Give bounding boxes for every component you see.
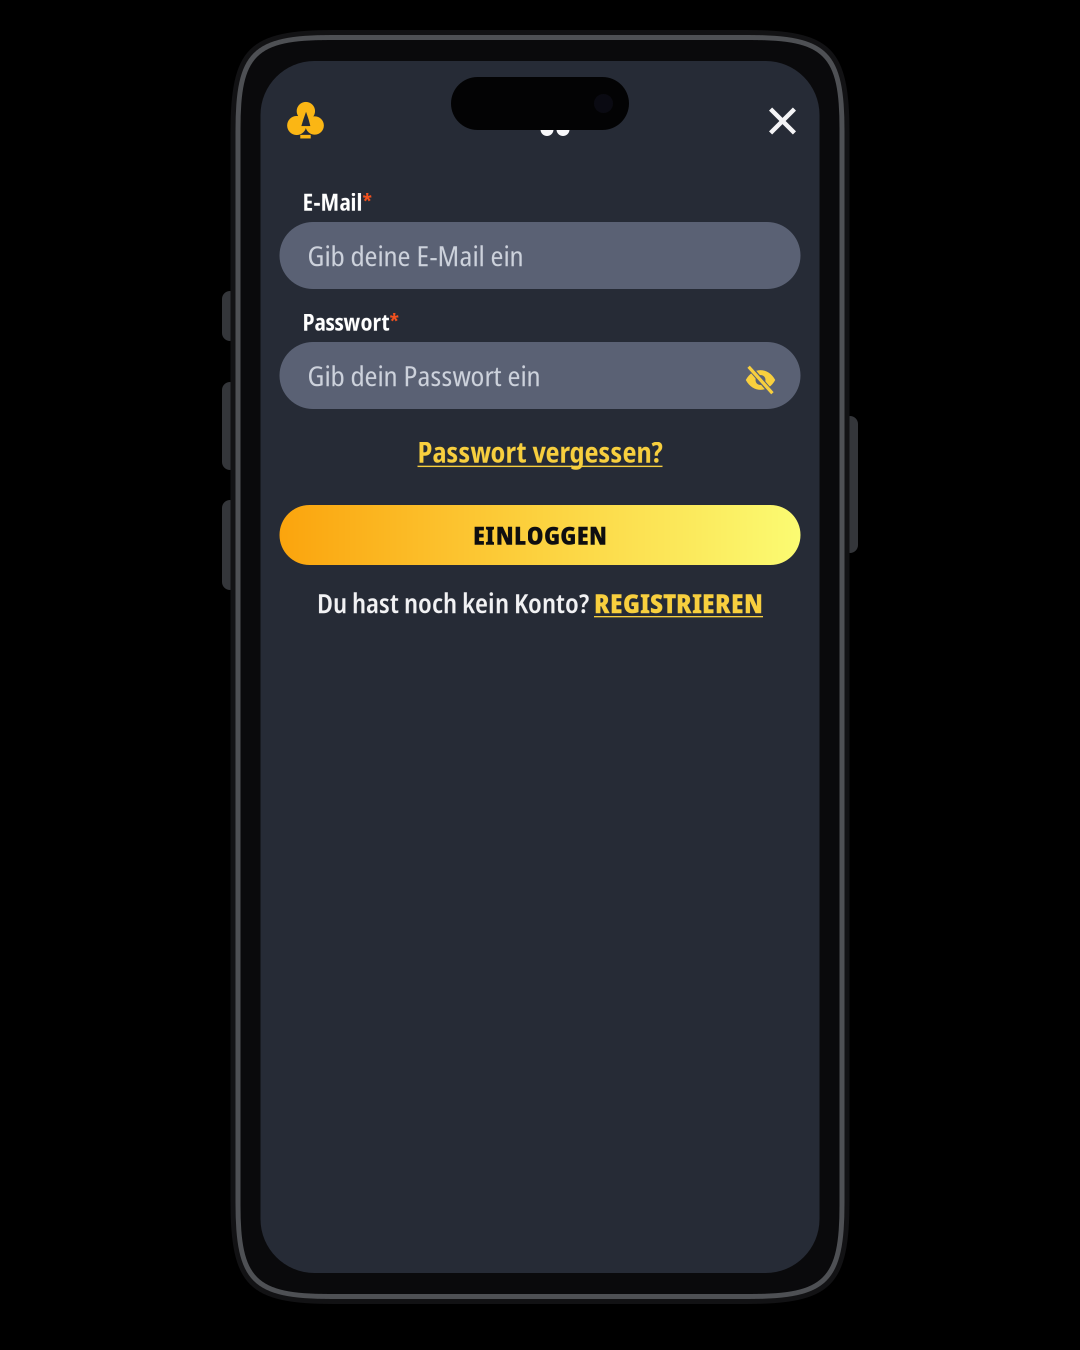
button[interactable]: Close xyxy=(756,95,808,147)
staticText: N xyxy=(496,518,514,552)
staticText: G xyxy=(544,518,560,552)
staticText: I xyxy=(485,518,495,552)
button[interactable]: Home xyxy=(279,95,331,147)
button[interactable]: E xyxy=(279,505,800,565)
staticText: Gib dein Passwort ein xyxy=(307,356,540,394)
button[interactable]: REGISTRIEREN xyxy=(594,585,763,621)
button[interactable]: Show password xyxy=(734,342,786,409)
staticText: N xyxy=(589,518,607,552)
staticText: Passwort vergessen? xyxy=(417,433,662,471)
staticText: E-Mail xyxy=(302,187,362,217)
staticText: Passwort xyxy=(302,307,389,337)
staticText: Du hast noch kein Konto? xyxy=(317,585,589,621)
button[interactable]: Passwort vergessen? xyxy=(279,437,800,467)
staticText: * xyxy=(362,187,371,214)
staticText: L xyxy=(514,518,526,552)
staticText: REGISTRIEREN xyxy=(594,585,763,621)
staticText: * xyxy=(389,307,398,334)
staticText: O xyxy=(526,518,543,552)
staticText: G xyxy=(560,518,576,552)
staticText: E xyxy=(473,518,485,552)
staticText: Gib deine E-Mail ein xyxy=(307,236,523,274)
staticText: E xyxy=(577,518,589,552)
